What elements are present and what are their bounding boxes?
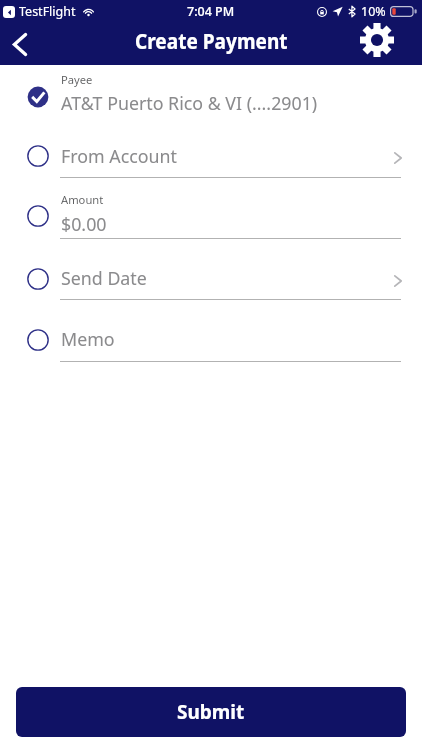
staticText: Amount	[61, 192, 104, 207]
button[interactable]	[0, 125, 422, 177]
staticText: From Account	[61, 144, 177, 168]
button[interactable]: Settings	[356, 20, 397, 59]
staticText: 10%	[361, 3, 386, 20]
staticText: Create Payment	[135, 26, 288, 56]
button[interactable]	[0, 309, 422, 361]
button[interactable]	[0, 247, 422, 299]
staticText: $0.00	[61, 212, 107, 236]
staticText: Memo	[61, 327, 115, 351]
button[interactable]: Submit	[16, 687, 406, 737]
button[interactable]: Back	[0, 22, 39, 65]
button[interactable]	[0, 186, 422, 238]
staticText: TestFlight	[19, 3, 76, 20]
staticText: Submit	[177, 699, 245, 725]
staticText: 7:04 PM	[187, 3, 235, 20]
staticText: Send Date	[61, 266, 147, 290]
staticText: Payee	[61, 72, 93, 87]
button[interactable]	[0, 64, 422, 116]
staticText: AT&T Puerto Rico & VI (....2901)	[61, 91, 318, 115]
